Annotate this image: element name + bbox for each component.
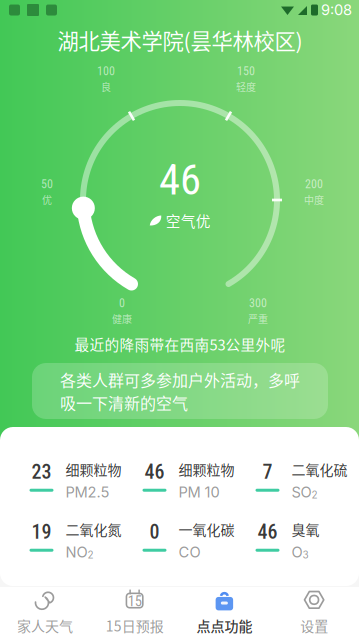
staticText: 点点功能 [196,615,252,636]
staticText: 50 [41,177,53,191]
button[interactable]: 家人天气 [0,587,90,638]
staticText: 臭氧 [291,519,319,539]
staticText: 15日预报 [106,615,164,636]
button[interactable]: 15 [90,587,180,638]
staticText: 46 [257,520,277,544]
staticText: 轻度 [236,79,256,94]
staticText: PM 10 [178,483,219,501]
staticText: 100 [97,64,115,78]
staticText: 优 [42,192,52,207]
staticText: 300 [249,296,267,310]
staticText: 空气优 [166,210,211,231]
staticText: 严重 [248,311,268,326]
staticText: 各类人群可多参加户外活动，多呼吸一下清新的空气 [60,368,300,414]
staticText: 0 [119,296,125,310]
staticText: SO [291,483,311,501]
staticText: 健康 [112,311,132,326]
staticText: 一氧化碳 [178,519,234,539]
staticText: 15 [128,593,142,610]
button[interactable]: 点点功能 [179,587,269,638]
staticText: 良 [101,79,111,94]
staticText: 150 [237,64,255,78]
staticText: 2 [311,489,317,501]
staticText: CO [178,543,200,561]
staticText: 家人天气 [17,615,73,636]
staticText: 中度 [304,192,324,207]
staticText: 0 [149,520,159,544]
staticText: 二氧化硫 [291,459,347,479]
staticText: 3 [302,549,308,561]
staticText: 19 [31,520,51,544]
button[interactable]: 设置 [269,587,359,638]
staticText: 最近的降雨带在西南53公里外呢 [74,333,285,355]
staticText: 23 [31,460,51,484]
staticText: 湖北美术学院(昙华林校区) [57,25,302,55]
staticText: NO [65,543,87,561]
staticText: PM2.5 [65,483,109,501]
staticText: 细颗粒物 [178,459,234,479]
staticText: 46 [159,155,201,205]
staticText: 7 [262,460,272,484]
staticText: O [291,543,302,561]
staticText: 2 [87,549,93,561]
staticText: 细颗粒物 [65,459,121,479]
staticText: 200 [305,177,323,191]
staticText: 9:08 [321,1,352,19]
staticText: 46 [144,460,164,484]
staticText: 二氧化氮 [65,519,121,539]
staticText: 设置 [300,615,328,636]
